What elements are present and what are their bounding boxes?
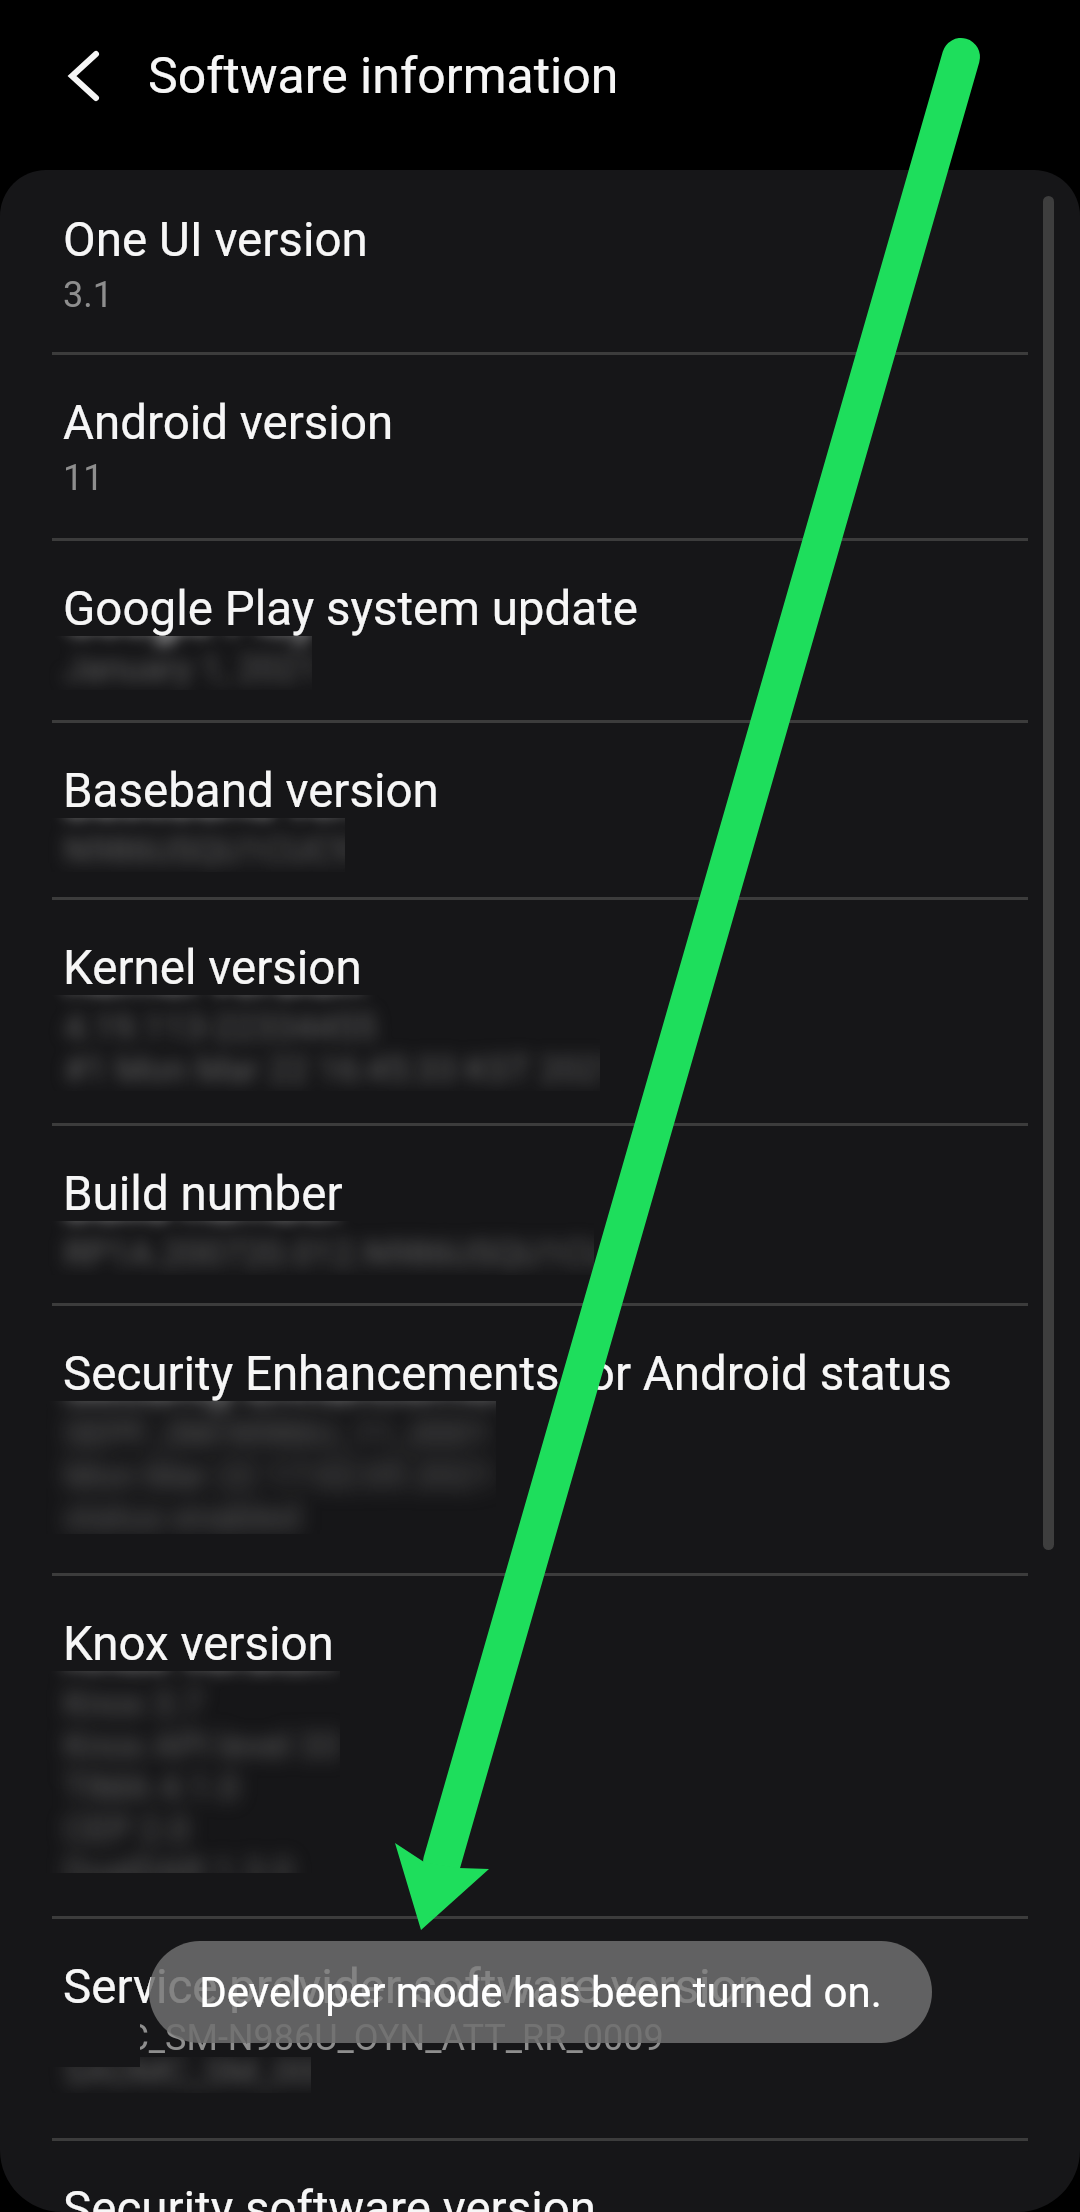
staticText: DualDAR 1.3.0 — [64, 1851, 294, 1873]
staticText: Google Play system update — [64, 636, 312, 645]
staticText: Security software version — [63, 2181, 597, 2212]
staticText: Kernel version — [63, 940, 362, 996]
staticText: 11 — [63, 457, 104, 499]
staticText: status enabled — [64, 1497, 300, 1534]
staticText: Knox version — [64, 1671, 335, 1680]
button[interactable]: Security software version — [0, 2139, 1080, 2212]
staticText: Baseband version — [64, 818, 345, 827]
staticText: MC_SM-N986U_OYN_ATT_RR_0009 — [94, 2017, 664, 2059]
staticText: Build number — [63, 1166, 343, 1222]
button[interactable]: Security Enhancements for Android status — [0, 1304, 1080, 1574]
staticText: Security Enhancements for Android status — [64, 1401, 496, 1410]
staticText: 4.19.113-22334455 — [64, 1007, 377, 1049]
button[interactable]: Kernel version — [0, 898, 1080, 1124]
staticText: 3.1 — [63, 274, 113, 316]
button[interactable]: Build number — [0, 1124, 1080, 1304]
staticText: TIMA 4.1.0 — [64, 1767, 240, 1809]
button[interactable]: Android version — [0, 353, 1080, 539]
staticText: Security Enhancements for Android status — [63, 1346, 952, 1402]
staticText: SEPF_SM-N986U_11_0001 — [64, 1413, 492, 1455]
staticText: Kernel version — [64, 995, 363, 1004]
staticText: #1 Mon Mar 22 16:45:33 KST 2021 — [64, 1049, 600, 1091]
staticText: RP1A.200720.012.N986USQU1CUC9 — [64, 1233, 594, 1275]
staticText: Service provider software version — [63, 1959, 764, 2015]
button[interactable]: Developer mode has been turned on. — [149, 1941, 932, 2043]
staticText: Mon Mar 22 17:02:05 2021 — [64, 1455, 495, 1497]
staticText: Knox 3.7 — [64, 1683, 203, 1725]
staticText: Google Play system update — [63, 581, 638, 637]
staticText: Knox version — [63, 1616, 334, 1672]
staticText: Build number — [64, 1221, 344, 1230]
button[interactable]: Google Play system update — [0, 539, 1080, 721]
staticText: Knox API level 33 — [64, 1725, 340, 1767]
staticText: Android version — [63, 395, 394, 451]
button[interactable]: One UI version — [0, 170, 1080, 353]
staticText: CEP 2.0 — [64, 1809, 190, 1851]
staticText: SAOMC_SM_0009 — [64, 2057, 311, 2093]
staticText: Baseband version — [63, 763, 439, 819]
button[interactable]: Back — [38, 30, 130, 122]
staticText: January 1, 2021 — [64, 648, 312, 690]
staticText: Software information — [148, 47, 619, 106]
button[interactable]: Service provider software version — [0, 1917, 1080, 2139]
button[interactable]: Knox version — [0, 1574, 1080, 1917]
button[interactable]: Baseband version — [0, 721, 1080, 898]
staticText: N986USQU1CUC9 — [64, 830, 345, 872]
staticText: Developer mode has been turned on. — [199, 1968, 882, 2017]
staticText: One UI version — [63, 212, 368, 268]
